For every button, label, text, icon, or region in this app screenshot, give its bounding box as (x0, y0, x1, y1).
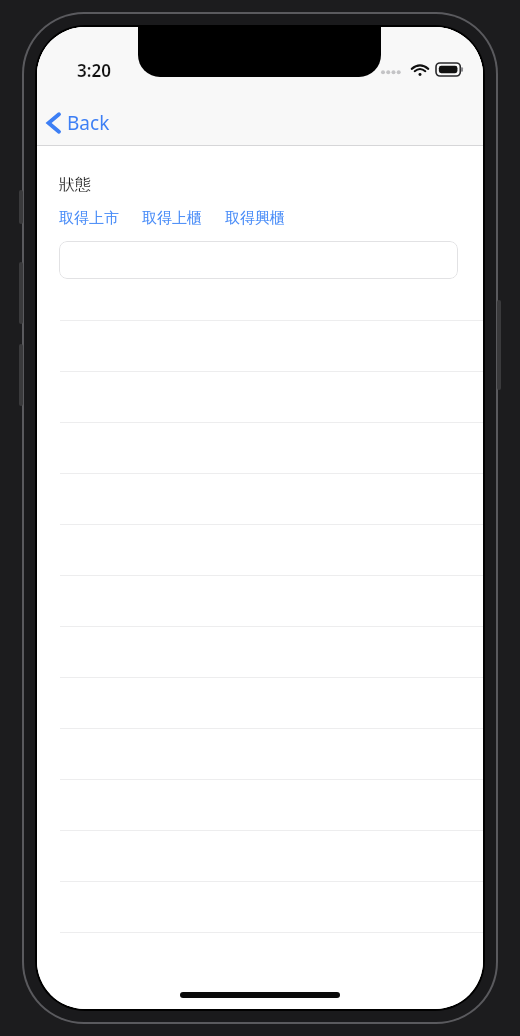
staticText: 狀態 (59, 175, 91, 195)
button[interactable]: Back (43, 106, 120, 140)
staticText: 取得上櫃 (142, 209, 202, 228)
staticText: Back (67, 110, 110, 136)
staticText: 取得上市 (59, 209, 119, 228)
button[interactable]: 取得上櫃 (142, 209, 202, 228)
button[interactable] (37, 932, 483, 983)
staticText: 取得興櫃 (225, 209, 285, 228)
button[interactable]: 取得興櫃 (225, 209, 285, 228)
button[interactable] (59, 241, 458, 279)
button[interactable]: 取得上市 (59, 209, 119, 228)
staticText: 3:20 (77, 59, 111, 82)
